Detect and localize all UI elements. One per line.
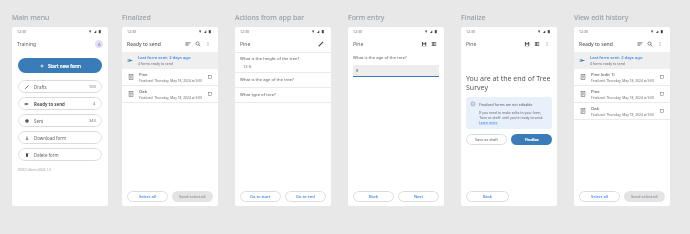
staticText: Sent bbox=[34, 118, 44, 124]
staticText: 12:30 bbox=[466, 29, 475, 34]
staticText: Finalized bbox=[122, 13, 151, 23]
button[interactable]: Select all bbox=[127, 191, 168, 202]
staticText: Send selected bbox=[631, 194, 658, 199]
button[interactable]: Sort bbox=[183, 39, 193, 49]
button[interactable]: Save bbox=[419, 39, 429, 49]
staticText: A bbox=[98, 42, 101, 47]
staticText: Select all bbox=[591, 194, 608, 199]
staticText: Delete form bbox=[34, 152, 59, 158]
button[interactable]: Oak bbox=[574, 103, 670, 119]
button[interactable]: Next bbox=[398, 191, 439, 202]
button[interactable]: 8 bbox=[353, 65, 439, 76]
staticText: Save as draft bbox=[475, 137, 498, 142]
staticText: Go to end bbox=[296, 194, 315, 199]
staticText: ODK Collect v2024.1.3 bbox=[18, 168, 102, 172]
button[interactable]: Oak bbox=[122, 86, 218, 102]
staticText: Select all bbox=[139, 194, 156, 199]
button[interactable]: More options bbox=[655, 39, 665, 49]
staticText: 12:30 bbox=[17, 29, 26, 34]
button[interactable]: Learn more bbox=[479, 120, 498, 125]
staticText: Finalize bbox=[461, 13, 486, 23]
staticText: Ready to send bbox=[127, 41, 161, 48]
button[interactable]: Save as draft bbox=[466, 134, 507, 145]
button[interactable]: What type of tree? bbox=[235, 88, 331, 102]
staticText: 12:30 bbox=[353, 29, 362, 34]
staticText: Ready to send bbox=[579, 41, 613, 48]
button[interactable]: Ready to send bbox=[18, 97, 102, 110]
staticText: Pine bbox=[466, 41, 477, 48]
staticText: Next bbox=[414, 194, 424, 199]
staticText: Finalized: Thursday, May 18, 2024 at 9:0… bbox=[591, 112, 655, 116]
staticText: Back bbox=[369, 194, 379, 199]
button[interactable]: Back bbox=[466, 191, 509, 202]
staticText: 4 forms ready to send bbox=[138, 61, 173, 66]
button[interactable]: Go to start bbox=[240, 191, 281, 202]
button[interactable]: Download form bbox=[18, 131, 102, 144]
staticText: Pine bbox=[240, 41, 251, 48]
staticText: Last form sent: 2 days ago bbox=[590, 55, 643, 61]
staticText: You are at the end of Tree Survey bbox=[466, 74, 552, 92]
staticText: Last form sent: 2 days ago bbox=[138, 55, 191, 61]
button[interactable]: Select all bbox=[579, 191, 620, 202]
staticText: Finalized: Thursday, May 18, 2024 at 9:0… bbox=[139, 95, 203, 99]
button[interactable]: More options bbox=[542, 39, 552, 49]
button[interactable]: Pine bbox=[574, 86, 670, 102]
staticText: 12:30 bbox=[127, 29, 136, 34]
staticText: 12:30 bbox=[579, 29, 588, 34]
button[interactable]: Back bbox=[353, 191, 394, 202]
staticText: 4 bbox=[93, 101, 96, 106]
staticText: If you need to make edits to your form, … bbox=[479, 110, 548, 120]
staticText: View edit history bbox=[574, 13, 629, 23]
staticText: Finalized: Thursday, May 18, 2024 at 9:0… bbox=[139, 78, 203, 82]
button[interactable]: Account bbox=[95, 40, 103, 48]
button[interactable]: Form index bbox=[429, 39, 439, 49]
staticText: What is the age of the tree? bbox=[353, 55, 407, 61]
staticText: Oak bbox=[591, 106, 600, 112]
staticText: 4 forms ready to send bbox=[590, 61, 625, 66]
button[interactable]: Finalize bbox=[511, 134, 552, 145]
staticText: Oak bbox=[139, 89, 148, 95]
staticText: Finalized: Thursday, May 18, 2024 at 9:0… bbox=[591, 78, 655, 82]
staticText: Back bbox=[483, 194, 493, 199]
staticText: Actions from app bar bbox=[235, 13, 305, 23]
button[interactable]: Search bbox=[645, 39, 655, 49]
button[interactable]: Send selected bbox=[172, 191, 213, 202]
button[interactable]: Save bbox=[522, 39, 532, 49]
staticText: Pine bbox=[591, 89, 600, 95]
button[interactable]: Send selected bbox=[624, 191, 665, 202]
button[interactable]: Go to end bbox=[285, 191, 326, 202]
staticText: What is the height of the tree? bbox=[240, 56, 300, 62]
staticText: 12:30 bbox=[240, 29, 249, 34]
button[interactable]: Pine (edit 1) bbox=[574, 69, 670, 85]
staticText: What is the age of the tree? bbox=[240, 77, 294, 83]
button[interactable]: More options bbox=[203, 39, 213, 49]
button[interactable]: Edit bbox=[316, 39, 326, 49]
staticText: Pine bbox=[353, 41, 364, 48]
button[interactable]: Pine bbox=[122, 69, 218, 85]
button[interactable]: Sent bbox=[18, 114, 102, 127]
staticText: Finalize bbox=[525, 137, 539, 142]
button[interactable]: What is the age of the tree? bbox=[235, 73, 331, 87]
staticText: Finalized forms are not editable. bbox=[479, 102, 534, 107]
staticText: What type of tree? bbox=[240, 92, 276, 98]
staticText: Drafts bbox=[34, 84, 47, 90]
staticText: Finalized: Thursday, May 18, 2024 at 9:0… bbox=[591, 95, 655, 99]
button[interactable]: Delete form bbox=[18, 148, 102, 161]
staticText: Ready to send bbox=[34, 101, 65, 107]
staticText: Send selected bbox=[179, 194, 206, 199]
button[interactable]: Start new form bbox=[18, 58, 102, 73]
button[interactable]: Sort bbox=[635, 39, 645, 49]
button[interactable]: Drafts bbox=[18, 80, 102, 93]
staticText: 343 bbox=[89, 118, 96, 123]
staticText: 13 ft bbox=[243, 64, 252, 69]
staticText: Go to start bbox=[250, 194, 271, 199]
staticText: Form entry bbox=[348, 13, 385, 23]
staticText: Pine (edit 1) bbox=[591, 72, 615, 78]
staticText: 8 bbox=[356, 68, 359, 74]
button[interactable]: Form index bbox=[532, 39, 542, 49]
staticText: Main menu bbox=[12, 13, 50, 23]
staticText: Pine bbox=[139, 72, 148, 78]
staticText: Training bbox=[17, 41, 37, 48]
staticText: Start new form bbox=[48, 63, 81, 69]
button[interactable]: Search bbox=[193, 39, 203, 49]
